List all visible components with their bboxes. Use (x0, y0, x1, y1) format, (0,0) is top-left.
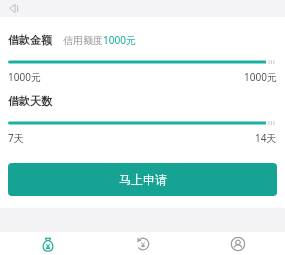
staticText: 马上申请 (119, 172, 167, 187)
button[interactable]: 马上申请 (8, 163, 277, 196)
button[interactable]: Loan (0, 232, 95, 255)
button[interactable]: Slider (8, 119, 277, 127)
staticText: 借款天数 (8, 94, 52, 108)
staticText: 14天 (255, 131, 277, 145)
button[interactable]: Profile (190, 232, 285, 255)
button[interactable]: Back (4, 0, 24, 17)
staticText: 信用额度 (63, 34, 103, 47)
staticText: 借款金额 (8, 33, 52, 47)
staticText: 7天 (8, 131, 24, 145)
staticText: 1000元 (103, 33, 136, 47)
button[interactable]: Slider (8, 58, 277, 66)
button[interactable]: Repay (95, 232, 190, 255)
staticText: 1000元 (8, 70, 41, 84)
staticText: 1000元 (244, 70, 277, 84)
